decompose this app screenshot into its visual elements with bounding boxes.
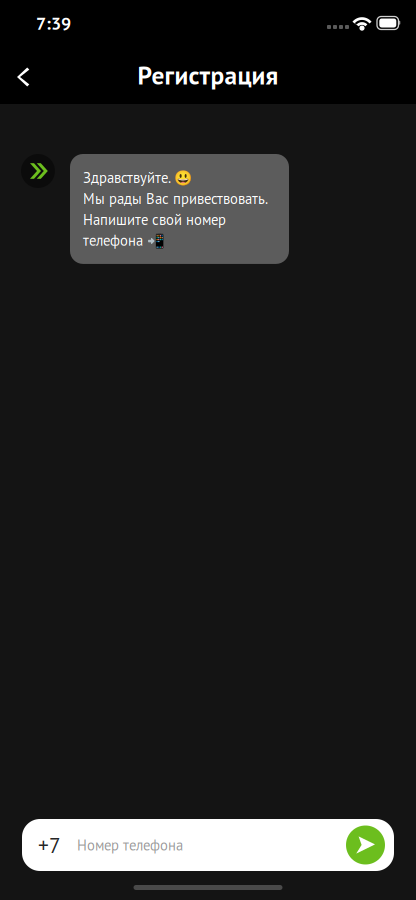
- staticText: 7:39: [36, 11, 71, 35]
- button[interactable]: Back: [2, 53, 42, 97]
- button[interactable]: +7: [22, 819, 346, 871]
- button[interactable]: Send: [346, 825, 385, 864]
- staticText: Номер телефона: [77, 835, 183, 854]
- staticText: Здравствуйте. 😃: [83, 168, 192, 187]
- staticText: Мы рады Вас привествовать.: [83, 189, 268, 208]
- staticText: +7: [38, 831, 61, 859]
- staticText: телефона 📲: [83, 231, 165, 250]
- staticText: Регистрация: [137, 59, 278, 91]
- staticText: Напишите свой номер: [83, 210, 226, 229]
